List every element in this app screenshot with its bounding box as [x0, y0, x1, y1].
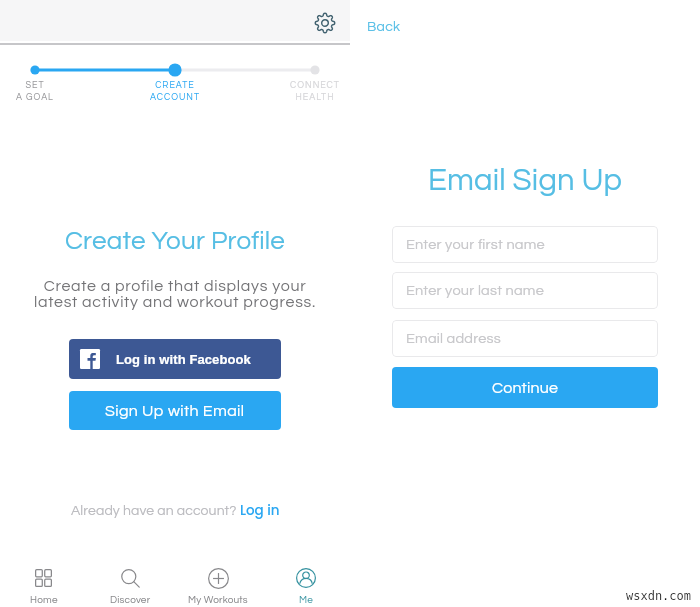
- staticText: Log in: [240, 501, 280, 520]
- button[interactable]: Continue: [392, 367, 658, 408]
- staticText: Me: [299, 595, 314, 605]
- staticText: Create a profile that displays your late…: [0, 278, 350, 310]
- staticText: Continue: [492, 380, 559, 396]
- staticText: Sign Up with Email: [105, 403, 245, 419]
- staticText: My Workouts: [188, 595, 248, 605]
- button[interactable]: Enter your last name: [392, 272, 658, 309]
- button[interactable]: Me: [262, 560, 350, 607]
- staticText: Email address: [406, 331, 502, 346]
- button[interactable]: My Workouts: [174, 560, 262, 607]
- staticText: Discover: [110, 595, 151, 605]
- staticText: CONNECT HEALTH: [280, 81, 350, 102]
- staticText: Already have an account?: [71, 504, 240, 518]
- button[interactable]: Discover: [87, 560, 174, 607]
- staticText: wsxdn.com: [626, 589, 692, 603]
- button[interactable]: Log in with Facebook: [69, 339, 281, 379]
- staticText: Log in with Facebook: [116, 352, 251, 367]
- button[interactable]: Sign Up with Email: [69, 391, 281, 430]
- staticText: Create Your Profile: [0, 228, 350, 255]
- button[interactable]: Back: [367, 20, 401, 34]
- button[interactable]: Home: [0, 560, 87, 607]
- button[interactable]: Settings: [310, 8, 340, 38]
- button[interactable]: Enter your first name: [392, 226, 658, 263]
- staticText: Home: [30, 595, 58, 605]
- staticText: Enter your last name: [406, 283, 545, 298]
- staticText: Email Sign Up: [350, 165, 700, 197]
- staticText: SET A GOAL: [0, 81, 70, 102]
- staticText: Enter your first name: [406, 237, 545, 252]
- staticText: CREATE ACCOUNT: [140, 81, 210, 102]
- button[interactable]: Log in: [240, 501, 280, 520]
- staticText: Back: [367, 20, 401, 34]
- button[interactable]: Email address: [392, 320, 658, 357]
